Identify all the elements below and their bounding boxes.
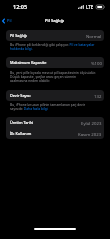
staticText: Devir Sayısı — [10, 93, 31, 98]
staticText: %100 — [91, 60, 102, 66]
staticText: Üretim Tarihi — [10, 120, 34, 125]
staticText: Bu, yeni pille kıyasla mevcut pil kapasi… — [10, 70, 96, 74]
staticText: Pil Sağlığı — [45, 18, 65, 24]
staticText: sayısıdır. Daha fazla bilgi — [10, 106, 48, 110]
staticText: Pil — [7, 18, 12, 24]
button[interactable]: İlk Kullanım — [6, 128, 104, 139]
button[interactable]: Pil Sağlığı — [6, 30, 104, 41]
staticText: Normal — [86, 33, 102, 39]
other: Back — [2, 18, 5, 24]
button[interactable]: Maksimum Kapasite — [6, 57, 104, 68]
staticText: Kasım 2023 — [78, 131, 102, 137]
button[interactable]: Devir Sayısı — [6, 90, 104, 101]
button[interactable]: Üretim Tarihi — [6, 117, 104, 128]
staticText: İlk Kullanım — [10, 131, 32, 136]
staticText: Bu iPhone pili beklendiği gibi çalışıyor… — [10, 42, 95, 46]
staticText: Maksimum Kapasite — [10, 60, 47, 65]
staticText: Bu, iPhone'unuzun pilinin tamamlanan şar… — [10, 102, 86, 106]
staticText: LTE — [86, 4, 94, 10]
staticText: azalmasına neden olabilir. — [10, 78, 50, 82]
staticText: 12:05 — [13, 3, 28, 10]
staticText: hakkında bilgi. — [10, 46, 33, 50]
staticText: 132 — [94, 93, 102, 99]
staticText: Pil Sağlığı — [10, 33, 28, 38]
staticText: Düşük kapasite, şarjlar arası geçen süre… — [10, 74, 77, 78]
button[interactable]: Back — [0, 16, 16, 26]
staticText: Eylül 2023 — [81, 120, 102, 126]
